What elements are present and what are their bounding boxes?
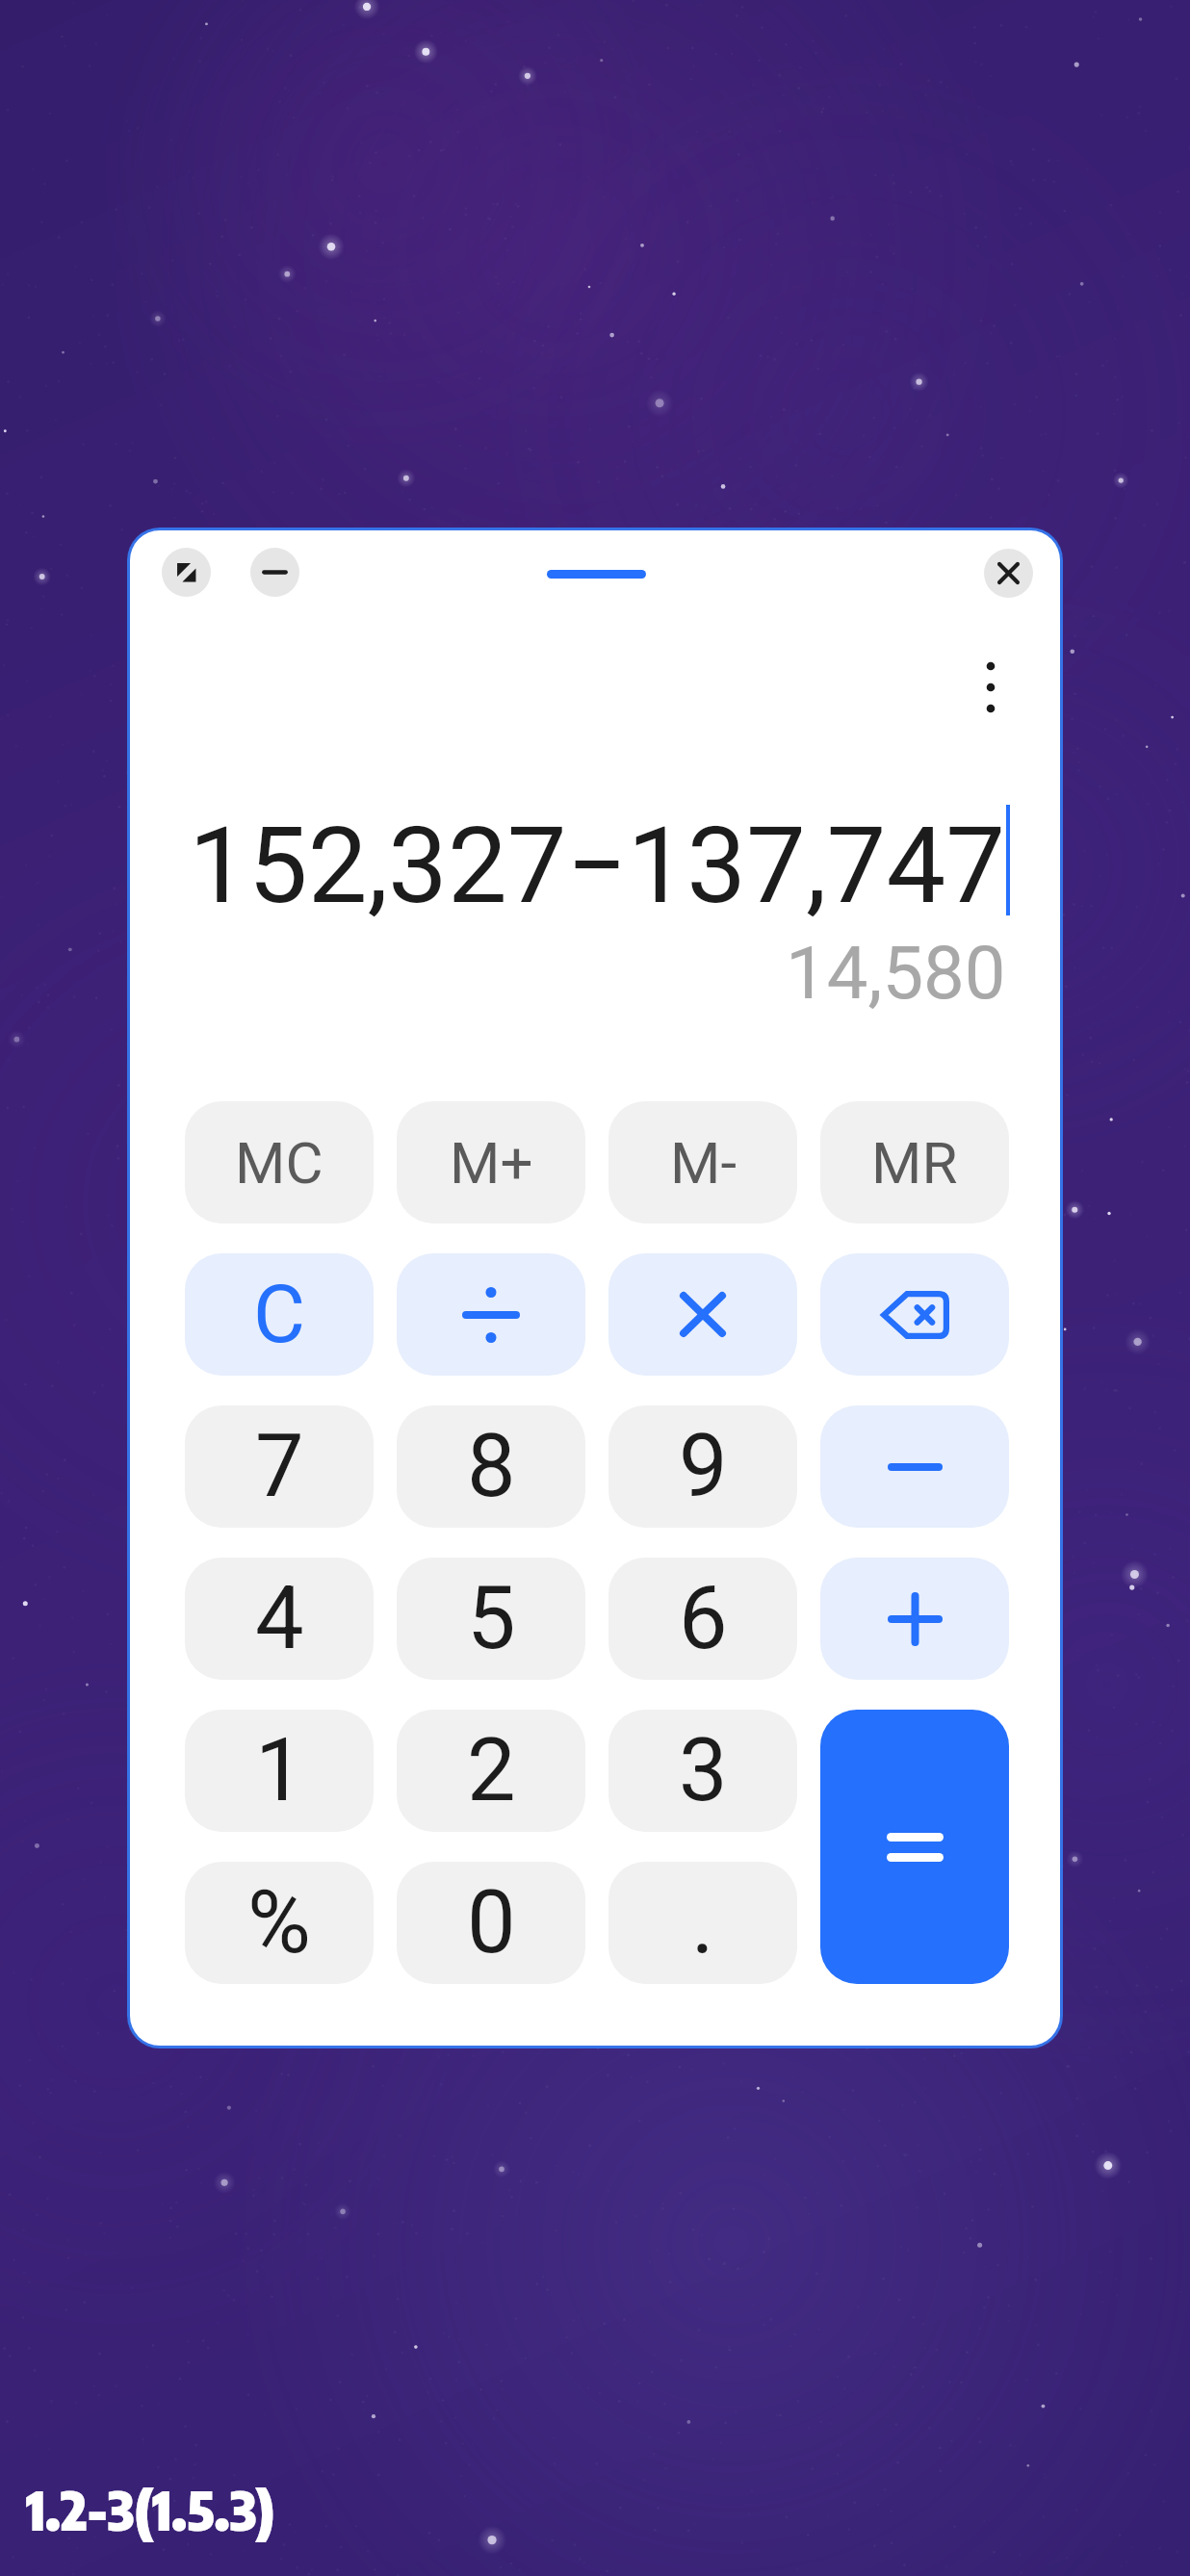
button[interactable]: MC	[185, 1101, 374, 1224]
staticText: 9	[679, 1416, 728, 1517]
staticText: C	[253, 1268, 306, 1361]
staticText: 8	[467, 1416, 516, 1517]
button[interactable]: Plus	[820, 1558, 1009, 1680]
button[interactable]: 9	[608, 1405, 797, 1528]
button[interactable]: 8	[397, 1405, 585, 1528]
staticText: 1	[255, 1720, 304, 1821]
staticText: M+	[450, 1129, 533, 1197]
button[interactable]: Minimize window	[250, 548, 299, 597]
button[interactable]: 6	[608, 1558, 797, 1680]
staticText: 3	[679, 1720, 728, 1821]
staticText: 1.2-3(1.5.3)	[26, 2475, 275, 2542]
staticText: 5	[467, 1568, 516, 1669]
button[interactable]: M+	[397, 1101, 585, 1224]
button[interactable]: Move window	[547, 570, 646, 579]
button[interactable]: 3	[608, 1710, 797, 1832]
staticText: %	[247, 1872, 311, 1973]
button[interactable]: Equals	[820, 1710, 1009, 1984]
button[interactable]: M-	[608, 1101, 797, 1224]
button[interactable]: Backspace	[820, 1253, 1009, 1376]
button[interactable]: MR	[820, 1101, 1009, 1224]
button[interactable]: Resize window	[162, 548, 211, 597]
staticText: 152,327−137,747	[189, 804, 1006, 928]
button[interactable]: 7	[185, 1405, 374, 1528]
staticText: MC	[235, 1129, 323, 1197]
staticText: 14,580	[786, 930, 1006, 1016]
button[interactable]: .	[608, 1862, 797, 1984]
staticText: M-	[670, 1129, 737, 1197]
button[interactable]: Multiply	[608, 1253, 797, 1376]
button[interactable]: C	[185, 1253, 374, 1376]
button[interactable]: 2	[397, 1710, 585, 1832]
staticText: .	[691, 1872, 714, 1973]
staticText: MR	[871, 1129, 958, 1197]
button[interactable]: 5	[397, 1558, 585, 1680]
button[interactable]: Close window	[984, 549, 1033, 598]
staticText: 6	[679, 1568, 728, 1669]
staticText: 2	[467, 1720, 516, 1821]
staticText: 7	[255, 1416, 304, 1517]
button[interactable]: Minus	[820, 1405, 1009, 1528]
staticText: 4	[255, 1568, 304, 1669]
button[interactable]: Divide	[397, 1253, 585, 1376]
staticText: 0	[467, 1872, 516, 1973]
button[interactable]: More options	[948, 645, 1033, 730]
button[interactable]: 1	[185, 1710, 374, 1832]
button[interactable]: %	[185, 1862, 374, 1984]
button[interactable]: 4	[185, 1558, 374, 1680]
button[interactable]: 0	[397, 1862, 585, 1984]
